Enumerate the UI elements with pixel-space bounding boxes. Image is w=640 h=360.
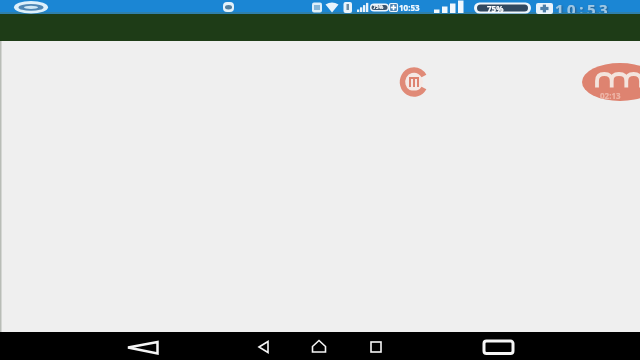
- staticText: 75%: [487, 3, 504, 14]
- staticText: 10:53: [555, 0, 612, 13]
- staticText: 75%: [373, 4, 384, 11]
- button[interactable]: 10:53: [0, 0, 640, 14]
- staticText: 02:13: [600, 90, 621, 101]
- staticText: 10:53: [399, 2, 420, 13]
